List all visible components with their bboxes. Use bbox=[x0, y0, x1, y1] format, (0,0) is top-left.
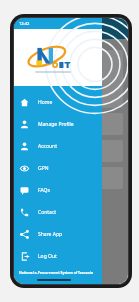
staticText: Manage Profile bbox=[38, 121, 74, 128]
staticText: 12:42 bbox=[19, 21, 30, 26]
staticText: National e-Procurement System of Tanzani… bbox=[19, 270, 93, 275]
button[interactable]: Log Out bbox=[14, 245, 102, 267]
staticText: Home bbox=[38, 99, 53, 106]
button[interactable]: FAQs bbox=[14, 179, 102, 201]
staticText: FAQs bbox=[38, 187, 50, 194]
button[interactable]: Manage Profile bbox=[14, 113, 102, 135]
staticText: Summary bbox=[45, 32, 59, 36]
staticText: Reports bbox=[86, 32, 97, 36]
button[interactable]: Account bbox=[14, 135, 102, 157]
staticText: GPN bbox=[38, 165, 49, 172]
button[interactable]: Share App bbox=[14, 223, 102, 245]
staticText: Awards bbox=[22, 149, 35, 154]
button[interactable]: Contact bbox=[14, 201, 102, 223]
staticText: Closing Today bbox=[22, 122, 45, 127]
staticText: Share App bbox=[38, 231, 63, 238]
button[interactable]: GPN bbox=[14, 157, 102, 179]
staticText: Log Out bbox=[38, 253, 57, 260]
staticText: Account bbox=[38, 143, 58, 150]
staticText: Contact bbox=[38, 209, 57, 216]
button[interactable]: Home bbox=[14, 91, 102, 113]
